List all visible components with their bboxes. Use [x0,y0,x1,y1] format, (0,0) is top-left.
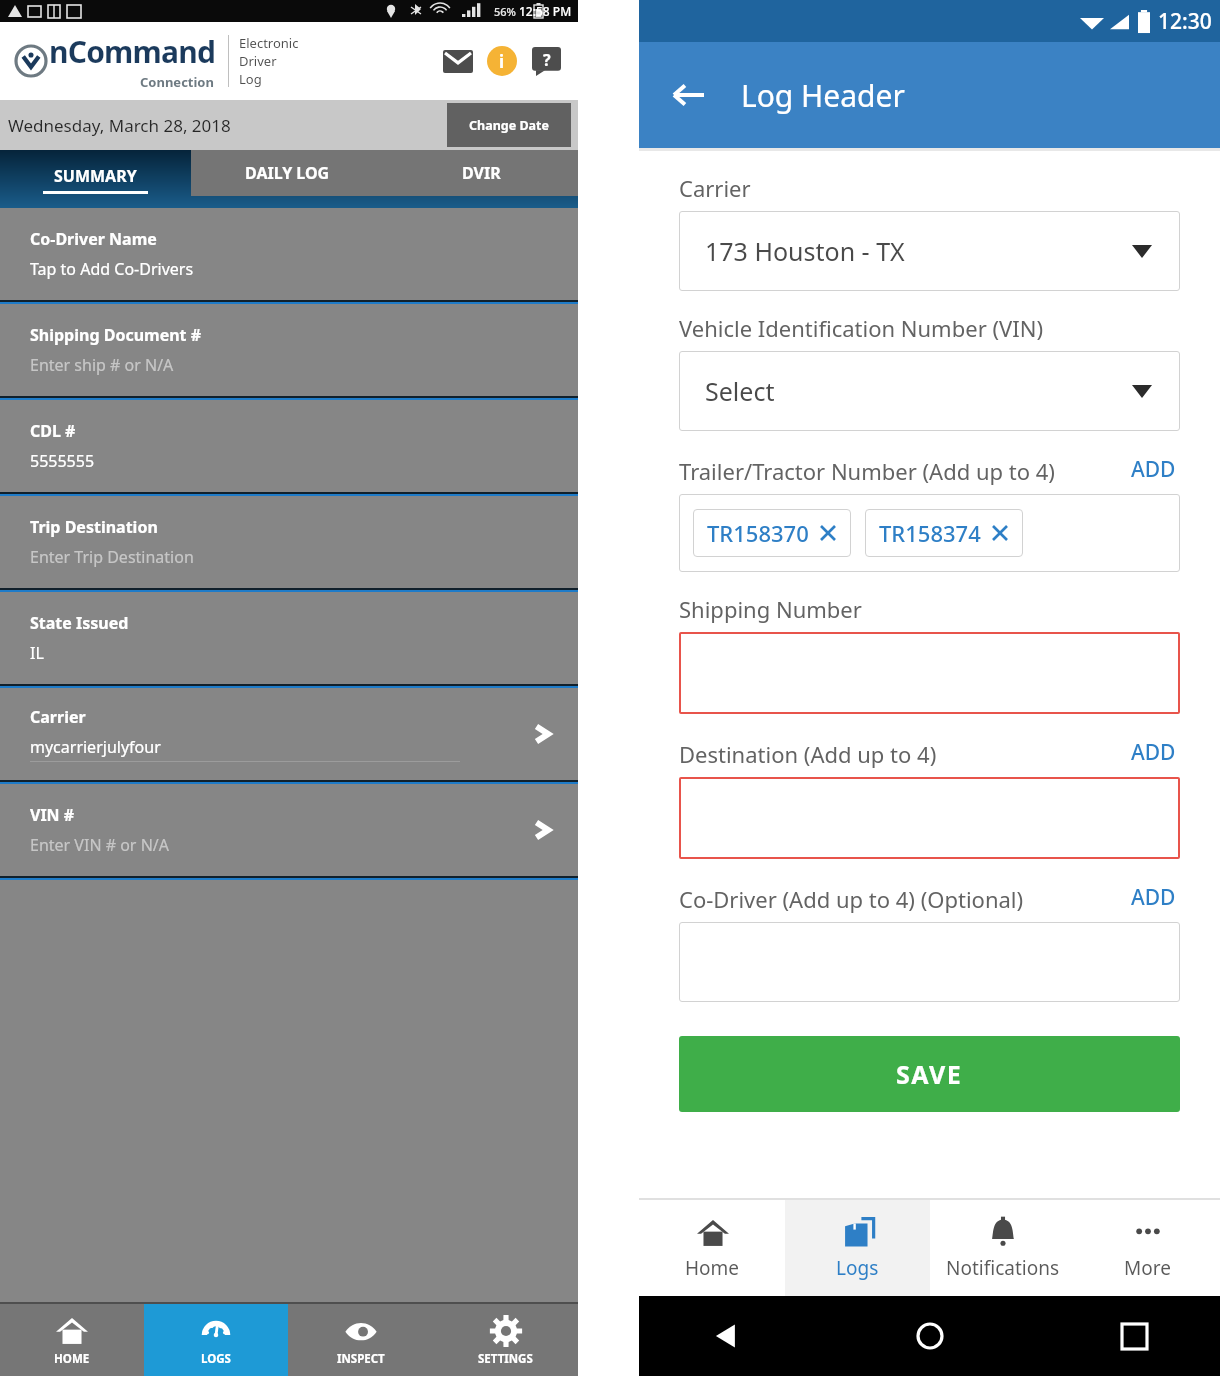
staticText: Log Header [741,75,905,116]
staticText: Tap to Add Co-Drivers [30,258,194,280]
staticText: INSPECT [337,1351,385,1367]
staticText: Connection [140,73,214,91]
button[interactable]: SUMMARY [0,150,191,208]
staticText: ADD [1131,883,1176,912]
staticText: ? [543,49,551,71]
staticText: i [499,50,505,73]
button[interactable]: Select [679,351,1180,431]
button[interactable]: SAVE [679,1036,1180,1112]
staticText: Shipping Document # [30,324,202,346]
staticText: 56% [494,4,516,19]
button[interactable]: Shipping Document # [0,304,578,400]
button[interactable]: TR158370 [693,509,851,557]
button[interactable]: Information [480,39,524,83]
button[interactable]: TR158374 [865,509,1023,557]
staticText: HOME [54,1351,90,1367]
button[interactable] [679,777,1180,859]
staticText: DAILY LOG [245,162,330,184]
staticText: 12:58 PM [519,3,572,19]
button[interactable]: Logs [785,1200,930,1296]
button[interactable]: INSPECT [288,1304,433,1376]
button[interactable] [679,922,1180,1002]
staticText: TR158370 [707,518,809,548]
staticText: SAVE [896,1057,963,1091]
staticText: SUMMARY [54,165,137,187]
button[interactable]: Trip Destination [0,496,578,592]
staticText: State Issued [30,612,129,634]
staticText: CDL # [30,420,76,442]
staticText: Carrier [30,706,86,728]
staticText: SETTINGS [478,1351,533,1367]
button[interactable]: Home [904,1310,956,1362]
button[interactable]: CDL # [0,400,578,496]
button[interactable]: HOME [0,1304,144,1376]
staticText: Destination (Add up to 4) [679,739,937,769]
button[interactable]: State Issued [0,592,578,688]
staticText: Co-Driver (Add up to 4) (Optional) [679,884,1024,914]
button[interactable]: Messages [436,39,480,83]
staticText: Trailer/Tractor Number (Add up to 4) [679,456,1055,486]
staticText: Co-Driver Name [30,228,157,250]
staticText: More [1124,1255,1171,1281]
staticText: Home [685,1255,740,1281]
staticText: Enter ship # or N/A [30,354,174,376]
staticText: Change Date [469,117,549,134]
button[interactable]: Co-Driver Name [0,208,578,304]
staticText: Wednesday, March 28, 2018 [8,114,231,137]
button[interactable]: Back [661,67,717,123]
button[interactable]: ADD [1127,881,1180,914]
button[interactable]: Notifications [930,1200,1075,1296]
button[interactable]: ADD [1127,453,1180,486]
staticText: TR158374 [879,518,981,548]
staticText: Enter Trip Destination [30,546,194,568]
staticText: Enter VIN # or N/A [30,834,169,856]
staticText: VIN # [30,804,75,826]
staticText: Logs [836,1255,879,1281]
staticText: nCommand [49,31,216,72]
button[interactable]: More [1075,1200,1220,1296]
button[interactable]: ADD [1127,736,1180,769]
button[interactable]: DAILY LOG [191,150,384,196]
staticText: 12:30 [1158,7,1212,36]
button[interactable]: Recent apps [1108,1310,1160,1362]
button[interactable]: 173 Houston - TX [679,211,1180,291]
button[interactable] [679,632,1180,714]
button[interactable]: VIN # [0,784,578,880]
button[interactable]: Change Date [447,103,571,147]
staticText: Notifications [946,1255,1060,1281]
staticText: LOGS [201,1351,231,1367]
staticText: 5555555 [30,450,95,472]
staticText: ADD [1131,455,1176,484]
button[interactable]: SETTINGS [433,1304,578,1376]
staticText: mycarrierjulyfour [30,736,161,758]
staticText: Shipping Number [679,594,862,624]
staticText: IL [30,642,44,664]
staticText: Log [239,70,262,88]
button[interactable]: DVIR [384,150,578,196]
button[interactable]: Back [699,1310,751,1362]
button[interactable]: Help [524,39,568,83]
staticText: 173 Houston - TX [705,234,905,268]
staticText: Electronic [239,34,299,52]
staticText: ADD [1131,738,1176,767]
staticText: Select [705,374,775,408]
button[interactable]: LOGS [144,1304,288,1376]
staticText: Carrier [679,173,751,203]
staticText: Driver [239,52,277,70]
button[interactable]: Home [639,1200,785,1296]
staticText: Trip Destination [30,516,158,538]
staticText: DVIR [462,162,501,184]
staticText: Vehicle Identification Number (VIN) [679,313,1044,343]
button[interactable]: Carrier [0,688,578,784]
